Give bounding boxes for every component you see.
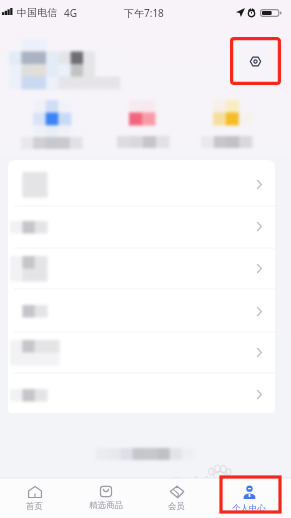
button[interactable]: Quick entry 3 [195,98,270,150]
staticText: 精选商品 [89,500,123,511]
staticText: 首页 [26,501,43,512]
staticText: jingyan.baidu.com [176,487,237,497]
button[interactable]: 会员 [142,479,210,517]
button[interactable]: 首页 [0,479,68,517]
staticText: 中国电信 [17,6,57,19]
staticText: Baidu [172,472,221,495]
staticText: 个人中心 [232,503,266,514]
staticText: 经验 [229,474,255,490]
staticText: 会员 [168,501,185,512]
staticText: 下午7:18 [124,6,164,20]
button[interactable]: List item 6 [8,374,275,416]
button[interactable]: 精选商品 [72,479,140,517]
staticText: 4G [64,6,77,20]
button[interactable]: List item 2 [8,206,275,248]
button[interactable]: Quick entry 1 [10,98,92,150]
button[interactable]: Quick entry 2 [106,98,181,150]
button[interactable]: List item 5 [8,331,275,373]
button[interactable]: List item 4 [8,290,275,332]
button[interactable]: 个人中心 [215,479,283,517]
button[interactable]: Settings [230,37,281,85]
button[interactable]: List item 3 [8,247,275,289]
button[interactable]: List item 1 [8,164,275,206]
